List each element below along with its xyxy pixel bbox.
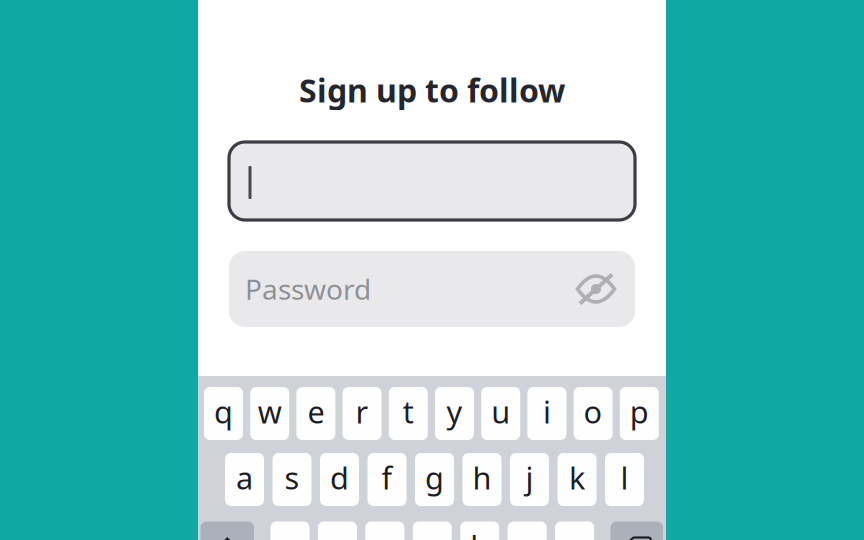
staticText: b — [470, 526, 489, 540]
button[interactable]: f — [367, 453, 406, 506]
staticText: Password — [245, 270, 371, 308]
staticText: w — [258, 391, 282, 432]
staticText: k — [569, 457, 585, 498]
staticText: s — [284, 457, 299, 498]
button[interactable]: y — [435, 387, 474, 440]
button[interactable]: k — [557, 453, 596, 506]
staticText: d — [330, 457, 349, 498]
button[interactable]: Delete — [610, 521, 663, 540]
staticText: l — [620, 457, 628, 498]
button[interactable]: x — [318, 521, 357, 540]
button[interactable]: n — [508, 521, 547, 540]
staticText: r — [356, 391, 369, 432]
button[interactable]: p — [620, 387, 659, 440]
staticText: Sign up to follow — [299, 69, 565, 111]
button[interactable]: g — [415, 453, 454, 506]
button[interactable]: Show password — [576, 272, 616, 306]
button[interactable]: Shift — [200, 521, 254, 540]
staticText: a — [236, 457, 253, 498]
staticText: q — [214, 391, 233, 432]
button[interactable]: v — [413, 521, 452, 540]
button[interactable]: j — [510, 453, 549, 506]
staticText: f — [381, 457, 392, 498]
button[interactable]: o — [574, 387, 613, 440]
button[interactable]: w — [250, 387, 289, 440]
staticText: p — [630, 391, 649, 432]
staticText: e — [307, 391, 324, 432]
staticText: g — [425, 457, 444, 498]
staticText: h — [472, 457, 491, 498]
staticText: i — [543, 391, 551, 432]
staticText: j — [525, 457, 533, 498]
staticText: u — [491, 391, 510, 432]
button[interactable]: u — [481, 387, 520, 440]
button[interactable]: a — [225, 453, 264, 506]
button[interactable]: d — [320, 453, 359, 506]
button[interactable]: e — [296, 387, 335, 440]
button[interactable]: r — [343, 387, 382, 440]
button[interactable]: b — [460, 521, 499, 540]
button[interactable]: z — [270, 521, 309, 540]
button[interactable]: i — [527, 387, 566, 440]
button[interactable]: t — [389, 387, 428, 440]
button[interactable]: l — [605, 453, 644, 506]
button[interactable]: q — [204, 387, 243, 440]
staticText: o — [584, 391, 603, 432]
button[interactable]: c — [365, 521, 404, 540]
staticText: t — [403, 391, 414, 432]
button[interactable]: m — [555, 521, 594, 540]
button[interactable]: Email address — [229, 142, 635, 220]
staticText: y — [446, 391, 462, 432]
button[interactable]: s — [272, 453, 311, 506]
button[interactable]: h — [462, 453, 501, 506]
